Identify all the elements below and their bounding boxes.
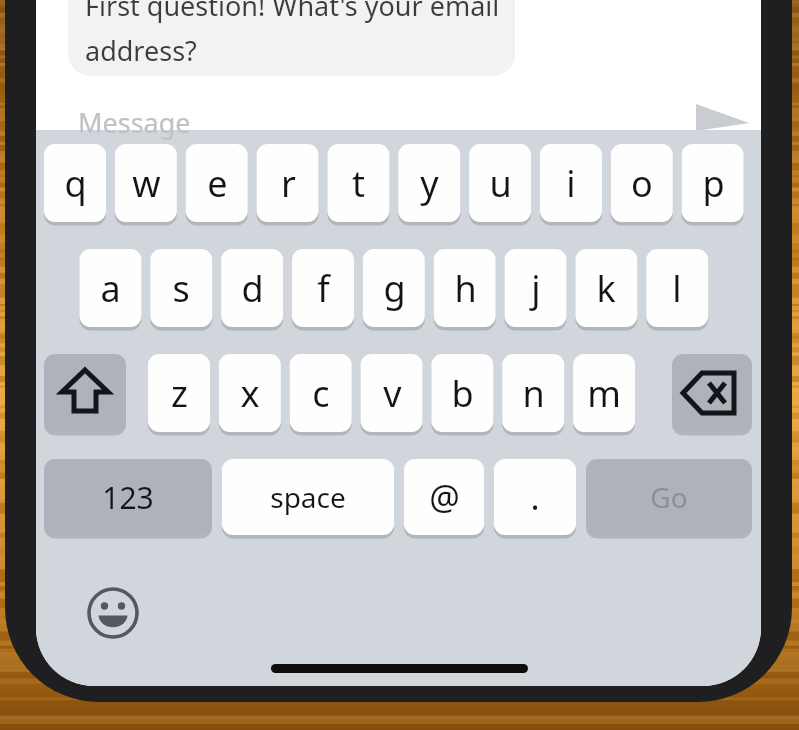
button[interactable]: l [646,249,708,327]
button[interactable]: s [150,249,212,327]
button[interactable]: d [221,249,283,327]
staticText: m [587,369,621,418]
button[interactable]: j [505,249,567,327]
staticText: t [352,159,365,208]
button[interactable]: c [290,354,352,432]
button[interactable]: h [434,249,496,327]
staticText: Message [78,104,191,141]
staticText: u [489,159,512,208]
staticText: e [207,159,228,208]
button[interactable]: n [502,354,564,432]
button[interactable]: q [44,144,106,222]
staticText: q [64,159,87,208]
staticText: c [312,369,330,418]
staticText: w [132,159,161,208]
staticText: j [531,264,541,313]
button[interactable]: Go [586,459,752,535]
button[interactable]: f [292,249,354,327]
staticText: Go [650,478,688,516]
button[interactable]: g [363,249,425,327]
staticText: o [631,159,653,208]
button[interactable]: a [79,249,141,327]
button[interactable]: space [222,459,394,535]
button[interactable]: z [148,354,210,432]
staticText: @ [429,474,460,520]
button[interactable]: m [573,354,635,432]
button[interactable]: k [575,249,637,327]
button[interactable]: Send [680,96,752,136]
button[interactable]: u [469,144,531,222]
staticText: a [100,264,121,313]
staticText: space [270,478,346,516]
staticText: b [451,369,474,418]
button[interactable]: w [115,144,177,222]
staticText: . [530,474,540,520]
button[interactable]: Shift [44,354,126,432]
button[interactable]: p [682,144,744,222]
button[interactable]: e [186,144,248,222]
button[interactable]: 123 [44,459,212,535]
staticText: s [172,264,190,313]
staticText: n [522,369,545,418]
staticText: d [241,264,264,313]
staticText: l [672,264,682,313]
staticText: p [702,159,725,208]
staticText: z [171,369,188,418]
button[interactable]: Backspace [672,354,752,432]
button[interactable]: t [327,144,389,222]
button[interactable]: o [611,144,673,222]
button[interactable]: r [257,144,319,222]
button[interactable]: y [398,144,460,222]
staticText: r [281,159,296,208]
staticText: g [383,264,406,313]
button[interactable]: Emoji [85,585,141,641]
staticText: f [317,264,330,313]
button[interactable]: b [431,354,493,432]
button[interactable]: i [540,144,602,222]
staticText: i [566,159,576,208]
staticText: x [240,369,260,418]
staticText: y [420,159,439,208]
staticText: v [383,369,402,418]
staticText: h [454,264,477,313]
button[interactable]: @ [404,459,484,535]
button[interactable]: x [219,354,281,432]
staticText: k [596,264,616,313]
staticText: 123 [102,477,154,518]
button[interactable]: . [494,459,576,535]
button[interactable]: v [361,354,423,432]
staticText: First question! What's your email addres… [85,0,500,67]
